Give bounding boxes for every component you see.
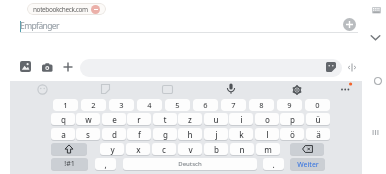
- button[interactable]: w: [76, 113, 100, 125]
- button[interactable]: m: [256, 143, 280, 155]
- staticText: ü: [315, 114, 321, 125]
- staticText: notebookcheck.com: [33, 5, 88, 14]
- staticText: 7: [231, 100, 236, 110]
- button[interactable]: Weiter: [290, 158, 325, 170]
- staticText: f: [138, 129, 141, 140]
- staticText: ,: [104, 159, 107, 170]
- button[interactable]: ä: [306, 128, 330, 140]
- staticText: Empfänger: [20, 20, 59, 32]
- button[interactable]: q: [51, 113, 75, 125]
- staticText: a: [61, 129, 66, 140]
- staticText: c: [162, 144, 166, 155]
- button[interactable]: c: [152, 143, 176, 155]
- button[interactable]: k: [229, 128, 253, 140]
- staticText: p: [290, 114, 295, 125]
- button[interactable]: j: [204, 128, 228, 140]
- button[interactable]: y: [100, 143, 124, 155]
- button[interactable]: [162, 85, 173, 94]
- staticText: j: [215, 129, 218, 140]
- staticText: h: [187, 129, 193, 140]
- button[interactable]: x: [126, 143, 150, 155]
- button[interactable]: 6: [193, 99, 218, 111]
- staticText: s: [86, 129, 90, 140]
- staticText: e: [112, 114, 117, 125]
- button[interactable]: [80, 59, 342, 77]
- staticText: g: [163, 129, 168, 140]
- button[interactable]: s: [76, 128, 100, 140]
- button[interactable]: [326, 62, 336, 72]
- button[interactable]: e: [102, 113, 126, 125]
- button[interactable]: [226, 83, 236, 95]
- button[interactable]: ,: [95, 158, 116, 170]
- button[interactable]: t: [153, 113, 177, 125]
- button[interactable]: Deutsch: [123, 158, 257, 170]
- staticText: m: [264, 144, 272, 155]
- staticText: x: [136, 144, 141, 155]
- button[interactable]: !#1: [51, 158, 88, 170]
- button[interactable]: 2: [81, 99, 106, 111]
- staticText: z: [188, 114, 192, 125]
- button[interactable]: a: [51, 128, 75, 140]
- button[interactable]: u: [204, 113, 228, 125]
- button[interactable]: [290, 143, 324, 155]
- button[interactable]: i: [229, 113, 253, 125]
- button[interactable]: [20, 61, 31, 72]
- button[interactable]: f: [127, 128, 151, 140]
- staticText: 1: [63, 100, 68, 110]
- button[interactable]: h: [178, 128, 202, 140]
- button[interactable]: 5: [165, 99, 190, 111]
- button[interactable]: notebookcheck.com: [27, 3, 106, 15]
- button[interactable]: z: [178, 113, 202, 125]
- button[interactable]: l: [255, 128, 279, 140]
- staticText: b: [214, 144, 219, 155]
- button[interactable]: d: [102, 128, 126, 140]
- staticText: .: [272, 159, 275, 170]
- button[interactable]: ö: [280, 128, 304, 140]
- button[interactable]: [369, 32, 382, 44]
- staticText: k: [239, 129, 244, 140]
- staticText: 8: [259, 100, 264, 110]
- button[interactable]: g: [153, 128, 177, 140]
- staticText: 5: [175, 100, 180, 110]
- staticText: 9: [287, 100, 292, 110]
- button[interactable]: p: [280, 113, 304, 125]
- button[interactable]: o: [255, 113, 279, 125]
- button[interactable]: 9: [277, 99, 302, 111]
- button[interactable]: ü: [306, 113, 330, 125]
- button[interactable]: [63, 62, 73, 72]
- button[interactable]: [373, 76, 383, 86]
- button[interactable]: [343, 18, 356, 31]
- button[interactable]: n: [230, 143, 254, 155]
- button[interactable]: .: [263, 158, 284, 170]
- button[interactable]: 0: [305, 99, 330, 111]
- button[interactable]: 4: [137, 99, 162, 111]
- staticText: u: [213, 114, 219, 125]
- staticText: ö: [290, 129, 295, 140]
- button[interactable]: [371, 128, 381, 137]
- button[interactable]: [51, 143, 87, 155]
- button[interactable]: [347, 63, 357, 72]
- staticText: t: [163, 114, 167, 125]
- staticText: !#1: [64, 159, 75, 169]
- staticText: o: [265, 114, 270, 125]
- button[interactable]: 1: [53, 99, 78, 111]
- button[interactable]: [42, 63, 53, 72]
- button[interactable]: [291, 84, 303, 96]
- button[interactable]: [37, 84, 48, 95]
- staticText: ä: [316, 129, 321, 140]
- button[interactable]: [100, 84, 110, 94]
- staticText: Deutsch: [178, 160, 202, 168]
- staticText: 0: [315, 100, 320, 110]
- staticText: 4: [147, 100, 152, 110]
- button[interactable]: [339, 82, 353, 94]
- button[interactable]: 8: [249, 99, 274, 111]
- button[interactable]: 3: [109, 99, 134, 111]
- staticText: q: [61, 114, 66, 125]
- staticText: y: [110, 144, 115, 155]
- button[interactable]: 7: [221, 99, 246, 111]
- staticText: v: [188, 144, 193, 155]
- button[interactable]: b: [204, 143, 228, 155]
- staticText: 3: [119, 100, 124, 110]
- button[interactable]: v: [178, 143, 202, 155]
- button[interactable]: r: [127, 113, 151, 125]
